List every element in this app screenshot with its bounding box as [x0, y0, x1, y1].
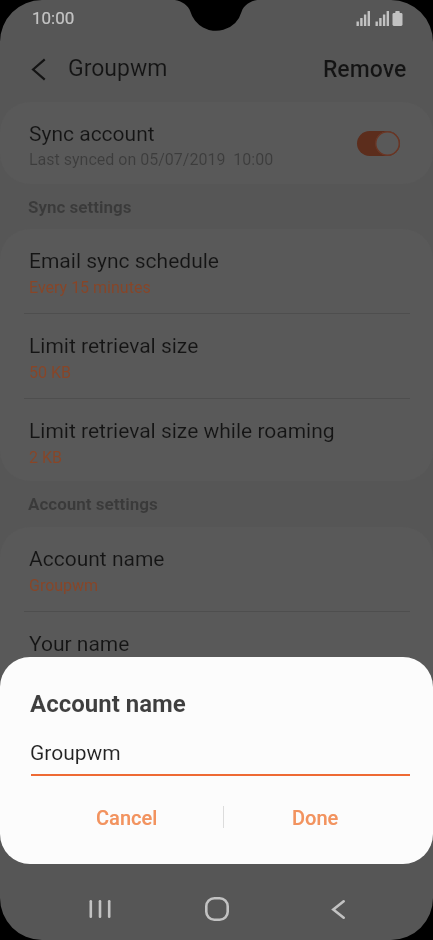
- staticText: Account name: [29, 547, 165, 572]
- staticText: Every 15 minutes: [29, 278, 151, 297]
- staticText: Sync settings: [28, 197, 132, 217]
- button[interactable]: Recent apps: [68, 878, 132, 940]
- staticText: Sync account: [29, 122, 155, 147]
- staticText: Limit retrieval size: [29, 334, 199, 359]
- button[interactable]: Home: [185, 878, 249, 940]
- button[interactable]: Sync account on: [357, 131, 400, 156]
- staticText: Groupwm: [30, 741, 121, 766]
- button[interactable]: Cancel: [56, 795, 198, 839]
- button[interactable]: Limit retrieval size while roaming: [0, 399, 433, 481]
- button[interactable]: Navigate up: [14, 41, 62, 97]
- staticText: Done: [292, 806, 339, 829]
- staticText: Cancel: [96, 806, 158, 829]
- staticText: Account name: [30, 690, 186, 718]
- staticText: Email sync schedule: [29, 249, 219, 274]
- button[interactable]: Account name: [0, 527, 433, 611]
- button[interactable]: Remove: [311, 41, 419, 97]
- staticText: Groupwm: [29, 576, 99, 595]
- button[interactable]: Email sync schedule: [0, 229, 433, 313]
- staticText: Account settings: [28, 494, 158, 514]
- button[interactable]: Back: [306, 878, 370, 940]
- staticText: 50 KB: [29, 363, 71, 382]
- button[interactable]: Done: [244, 795, 386, 839]
- staticText: 2 KB: [29, 448, 62, 467]
- staticText: Groupwm: [68, 55, 168, 82]
- staticText: Limit retrieval size while roaming: [29, 419, 335, 444]
- staticText: Remove: [323, 56, 407, 83]
- staticText: Last synced on 05/07/2019 10:00: [29, 150, 274, 169]
- staticText: Your name: [29, 632, 130, 657]
- staticText: 10:00: [32, 8, 75, 28]
- button[interactable]: Limit retrieval size: [0, 314, 433, 398]
- button[interactable]: Your name: [0, 612, 433, 696]
